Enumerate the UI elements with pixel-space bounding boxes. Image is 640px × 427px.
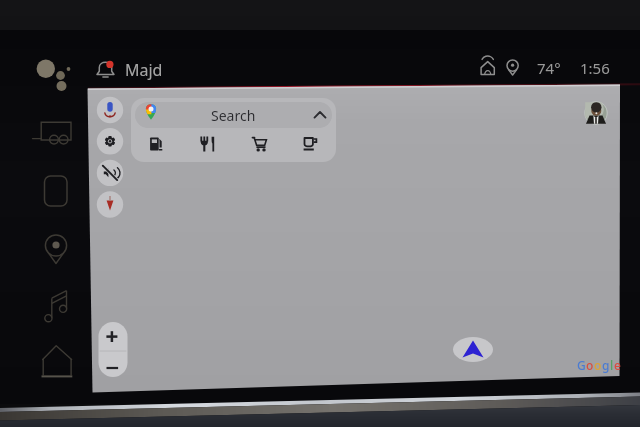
button[interactable]: Restaurants: [183, 130, 234, 158]
staticText: o: [586, 357, 594, 373]
staticText: l: [610, 357, 614, 373]
staticText: G: [577, 357, 586, 373]
staticText: 74°: [537, 58, 561, 78]
staticText: 1:56: [580, 58, 610, 78]
staticText: Majd: [125, 59, 163, 81]
button[interactable]: Gas stations: [131, 130, 183, 158]
staticText: Search: [211, 106, 256, 125]
button[interactable]: Groceries: [234, 130, 285, 158]
button[interactable]: Search: [135, 102, 332, 128]
staticText: o: [594, 357, 602, 373]
staticText: e: [614, 357, 621, 373]
button[interactable]: Coffee: [285, 130, 336, 158]
staticText: g: [602, 357, 610, 373]
